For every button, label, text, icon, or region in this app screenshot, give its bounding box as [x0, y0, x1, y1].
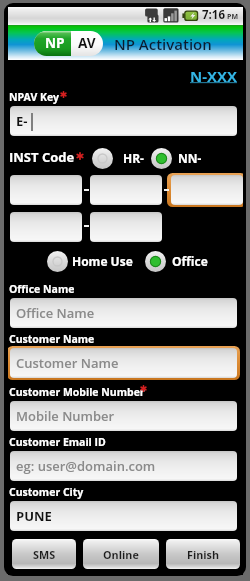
button[interactable]: NN-	[151, 148, 172, 169]
staticText: eg: user@domain.com	[16, 457, 156, 475]
staticText: SMS	[33, 547, 56, 562]
staticText: E-	[16, 112, 28, 130]
staticText: INST Code	[9, 148, 75, 166]
button[interactable]: SMS	[12, 539, 76, 569]
button[interactable]: NPAV logo	[34, 31, 103, 56]
button[interactable]: INST code part 5	[90, 212, 162, 242]
staticText: Office Name	[16, 304, 95, 322]
staticText: NPAV Key	[9, 90, 59, 104]
button[interactable]: INST code part 1	[10, 175, 82, 205]
staticText: Office Name	[9, 282, 75, 296]
button[interactable]: NPAV Key	[10, 106, 237, 136]
staticText: Finish	[187, 547, 220, 562]
staticText: Customer City	[9, 485, 84, 499]
staticText: NP	[45, 33, 65, 52]
staticText: Mobile Number	[16, 407, 115, 425]
staticText: Office	[172, 253, 208, 269]
staticText: Customer Name	[9, 332, 95, 346]
staticText: PUNE	[16, 507, 52, 525]
staticText: AV	[78, 33, 96, 52]
staticText: NN-	[178, 150, 202, 166]
button[interactable]: Customer Name	[10, 348, 237, 378]
button[interactable]: HR-	[92, 148, 113, 169]
staticText: Customer Name	[16, 354, 119, 372]
staticText: Customer Mobile Number	[9, 385, 145, 399]
button[interactable]: INST code part 3	[171, 175, 243, 205]
staticText: Customer Email ID	[9, 435, 106, 449]
button[interactable]: Customer Mobile Number	[10, 401, 237, 431]
button[interactable]: N-XXX	[186, 64, 243, 88]
button[interactable]: Customer Email ID	[10, 451, 237, 481]
button[interactable]: Office	[145, 251, 166, 272]
button[interactable]: INST code part 4	[10, 212, 82, 242]
staticText: 7:16	[202, 7, 225, 23]
button[interactable]: INST code part 2	[90, 175, 162, 205]
staticText: N-XXX	[190, 66, 238, 86]
staticText: Home Use	[72, 253, 133, 269]
staticText: Online	[103, 547, 139, 562]
staticText: PM	[227, 12, 238, 22]
button[interactable]: Finish	[166, 539, 240, 569]
staticText: NP Activation	[114, 34, 212, 54]
button[interactable]: Office Name	[10, 298, 237, 328]
button[interactable]: Customer City	[10, 501, 237, 531]
button[interactable]: Home Use	[47, 251, 68, 272]
staticText: HR-	[123, 150, 144, 166]
button[interactable]: Online	[83, 539, 159, 569]
